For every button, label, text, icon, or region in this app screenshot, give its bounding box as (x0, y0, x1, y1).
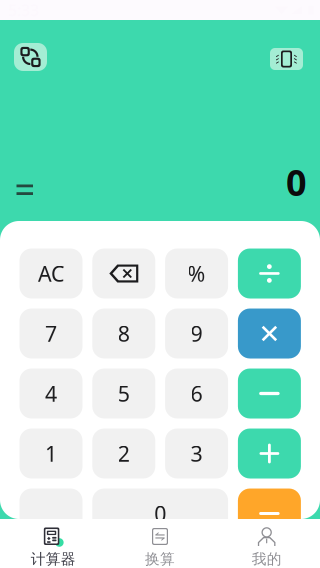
staticText: 8 (118, 319, 130, 348)
staticText: . (48, 499, 54, 528)
staticText: 1 (45, 439, 57, 468)
button[interactable]: 6 (165, 368, 228, 418)
button[interactable]: 我的 (213, 519, 320, 568)
button[interactable]: AC (19, 248, 82, 298)
staticText: 3 (191, 439, 203, 468)
button[interactable]: 5 (92, 368, 155, 418)
staticText: 0 (154, 499, 166, 528)
staticText: 我的 (252, 550, 282, 568)
button[interactable]: . (19, 488, 82, 538)
staticText: 计算器 (31, 550, 76, 568)
button[interactable] (238, 488, 301, 538)
staticText: 4 (45, 379, 57, 408)
button[interactable]: 1 (19, 428, 82, 478)
staticText: 6 (191, 379, 203, 408)
staticText: 5:33 (8, 0, 39, 21)
staticText: 9 (191, 319, 203, 348)
button[interactable] (238, 368, 301, 418)
button[interactable]: 0 (92, 488, 228, 538)
button[interactable]: 8 (92, 308, 155, 358)
staticText: 换算 (145, 550, 175, 568)
staticText: % (188, 259, 206, 288)
button[interactable]: % (165, 248, 228, 298)
staticText: 0 (286, 158, 307, 206)
button[interactable]: 4 (19, 368, 82, 418)
button[interactable]: 2 (92, 428, 155, 478)
staticText: 2 (118, 439, 130, 468)
button[interactable] (238, 248, 301, 298)
button[interactable]: 3 (165, 428, 228, 478)
staticText: 5 (118, 379, 130, 408)
button[interactable]: 计算器 (0, 519, 107, 568)
button[interactable]: 9 (165, 308, 228, 358)
button[interactable]: 换算 (107, 519, 213, 568)
staticText: AC (38, 259, 64, 288)
button[interactable]: Vibration (270, 48, 303, 70)
button[interactable]: 7 (19, 308, 82, 358)
button[interactable]: Unit converter (14, 43, 47, 71)
staticText: 7 (45, 319, 57, 348)
button[interactable] (238, 428, 301, 478)
button[interactable] (92, 248, 155, 298)
button[interactable] (238, 308, 301, 358)
